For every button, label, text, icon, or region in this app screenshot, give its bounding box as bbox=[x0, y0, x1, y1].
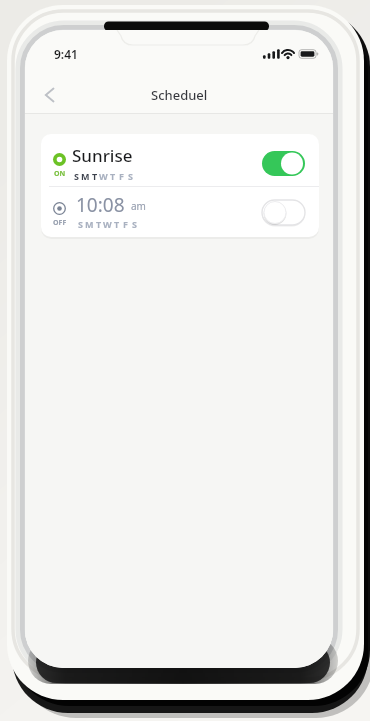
staticText: W bbox=[103, 218, 112, 230]
button[interactable]: ON bbox=[41, 134, 319, 186]
staticText: M bbox=[81, 170, 90, 182]
staticText: M bbox=[85, 218, 94, 230]
button[interactable] bbox=[262, 200, 305, 225]
button[interactable]: OFF bbox=[41, 187, 319, 237]
staticText: T bbox=[96, 218, 102, 230]
staticText: OFF bbox=[53, 218, 67, 228]
button[interactable] bbox=[35, 81, 63, 109]
staticText: W bbox=[99, 170, 108, 182]
staticText: F bbox=[119, 170, 124, 182]
staticText: F bbox=[123, 218, 128, 230]
staticText: S bbox=[128, 170, 133, 182]
staticText: 10:08 bbox=[76, 192, 125, 218]
staticText: Sunrise bbox=[72, 144, 133, 167]
staticText: Scheduel bbox=[151, 86, 208, 104]
staticText: am bbox=[131, 199, 146, 213]
staticText: 9:41 bbox=[54, 46, 78, 62]
staticText: T bbox=[110, 170, 116, 182]
staticText: T bbox=[92, 170, 98, 182]
staticText: T bbox=[114, 218, 120, 230]
staticText: S bbox=[78, 218, 83, 230]
staticText: S bbox=[74, 170, 79, 182]
button[interactable] bbox=[262, 151, 305, 176]
staticText: S bbox=[132, 218, 137, 230]
staticText: ON bbox=[54, 169, 66, 179]
